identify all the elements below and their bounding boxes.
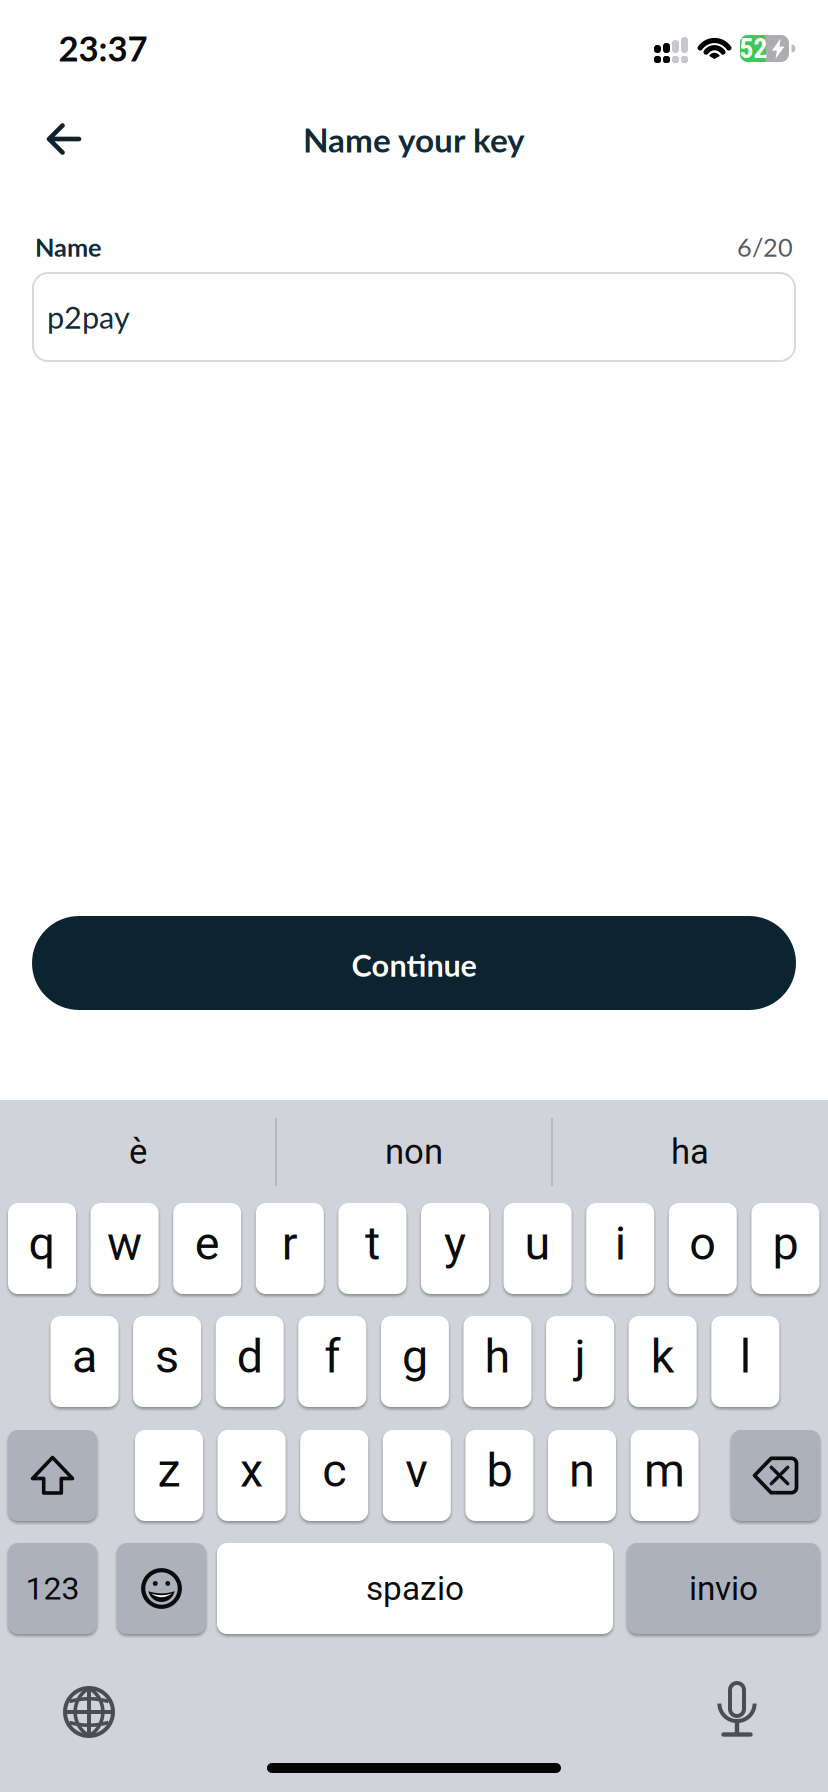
staticText: e [195,1216,220,1271]
staticText: invio [689,1569,758,1608]
button[interactable]: j [546,1316,614,1407]
button[interactable]: w [91,1203,159,1294]
button[interactable]: a [50,1316,118,1407]
staticText: non [385,1132,443,1172]
staticText: è [129,1132,147,1172]
staticText: Name [35,232,102,262]
staticText: s [155,1329,179,1384]
button[interactable]: v [383,1430,451,1521]
button[interactable]: g [381,1316,449,1407]
staticText: b [486,1443,512,1498]
button[interactable]: u [504,1203,572,1294]
staticText: t [365,1216,380,1271]
button[interactable]: ha [552,1102,828,1202]
staticText: 6/20 [737,232,793,262]
staticText: a [72,1329,97,1384]
staticText: o [689,1216,716,1271]
staticText: n [569,1443,595,1498]
button[interactable]: i [586,1203,654,1294]
staticText: k [651,1329,675,1384]
staticText: i [615,1216,626,1271]
button[interactable]: Shift [8,1430,97,1521]
button[interactable]: è [0,1102,276,1202]
button[interactable]: Dictation [718,1681,758,1740]
button[interactable]: m [631,1430,699,1521]
button[interactable]: f [298,1316,366,1407]
staticText: 123 [25,1570,79,1607]
button[interactable]: b [465,1430,533,1521]
button[interactable]: s [133,1316,201,1407]
button[interactable]: Back [32,109,96,169]
button[interactable]: Emoji [117,1543,206,1634]
button[interactable]: p [751,1203,819,1294]
staticText: h [484,1329,510,1384]
button[interactable]: q [8,1203,76,1294]
staticText: p [772,1216,798,1271]
staticText: 23:37 [58,27,147,69]
button[interactable]: l [711,1316,779,1407]
button[interactable]: k [629,1316,697,1407]
staticText: d [237,1329,263,1384]
button[interactable]: spazio [217,1543,613,1634]
staticText: Name your key [303,119,525,159]
button[interactable]: Next keyboard [58,1681,120,1743]
button[interactable]: o [669,1203,737,1294]
button[interactable]: z [135,1430,203,1521]
staticText: q [28,1216,55,1271]
staticText: m [644,1443,685,1498]
staticText: j [575,1329,586,1384]
staticText: Continue [351,947,476,983]
button[interactable]: x [218,1430,286,1521]
staticText: ha [671,1132,709,1172]
button[interactable]: non [276,1102,552,1202]
button[interactable]: y [421,1203,489,1294]
staticText: z [157,1443,180,1498]
staticText: spazio [366,1569,464,1608]
staticText: y [444,1216,466,1271]
staticText: w [107,1216,142,1271]
button[interactable]: Continue [32,916,796,1010]
staticText: f [324,1329,340,1384]
staticText: c [322,1443,346,1498]
staticText: p2pay [47,299,130,335]
staticText: l [740,1329,751,1384]
button[interactable]: n [548,1430,616,1521]
staticText: 52 [739,32,767,65]
staticText: g [402,1329,428,1384]
button[interactable]: d [216,1316,284,1407]
staticText: x [240,1443,263,1498]
button[interactable]: c [300,1430,368,1521]
button[interactable]: e [173,1203,241,1294]
button[interactable]: r [256,1203,324,1294]
button[interactable]: invio [627,1543,820,1634]
button[interactable]: Name [32,272,796,362]
staticText: u [525,1216,551,1271]
button[interactable]: t [338,1203,406,1294]
button[interactable]: h [463,1316,531,1407]
staticText: r [282,1216,298,1271]
button[interactable]: Delete [731,1430,820,1521]
button[interactable]: 123 [8,1543,97,1634]
staticText: v [405,1443,428,1498]
